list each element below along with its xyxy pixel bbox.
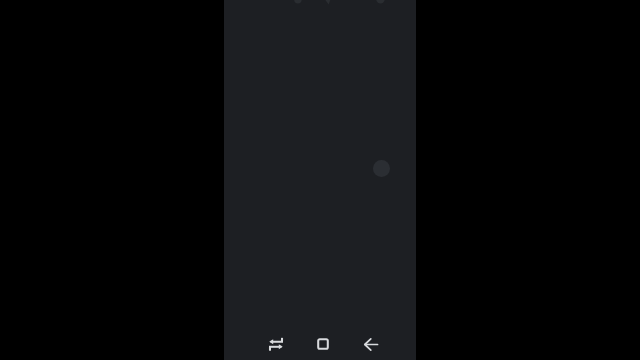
button[interactable]: Home [311,332,335,356]
button[interactable]: Switch input method [264,332,288,356]
button[interactable]: Back [358,332,382,356]
